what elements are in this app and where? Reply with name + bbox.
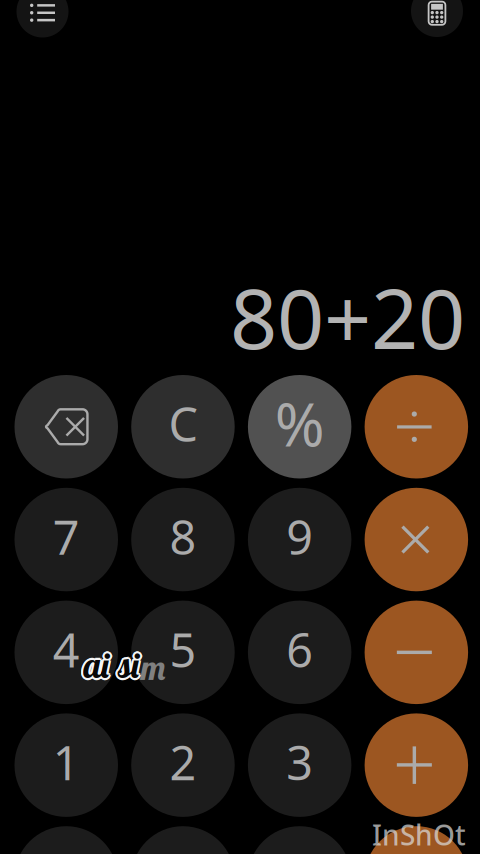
staticText: 3 <box>286 731 313 793</box>
staticText: 1 <box>53 731 80 793</box>
staticText: InShOt <box>372 816 466 853</box>
button[interactable]: Divide <box>365 375 468 478</box>
staticText: ai si <box>85 645 143 688</box>
staticText: 80+20 <box>230 262 465 372</box>
button[interactable]: 8 <box>131 488 235 591</box>
button[interactable]: Subtract <box>365 601 468 704</box>
staticText: 7 <box>53 506 80 568</box>
button[interactable]: % <box>248 375 351 478</box>
staticText: % <box>275 383 325 463</box>
button[interactable]: 6 <box>248 601 351 704</box>
staticText: 5 <box>169 618 196 680</box>
button[interactable]: History <box>16 0 68 37</box>
button[interactable]: Calculator <box>411 0 463 37</box>
button[interactable]: Delete <box>14 375 118 478</box>
staticText: ai si <box>81 643 139 687</box>
button[interactable]: Equals <box>365 826 468 854</box>
button[interactable]: Multiply <box>365 488 468 591</box>
button[interactable]: 0 <box>14 826 118 854</box>
button[interactable]: 2 <box>131 713 235 817</box>
staticText: m <box>140 645 167 689</box>
staticText: 2 <box>169 731 196 793</box>
staticText: ai si <box>85 642 143 685</box>
staticText: C <box>168 393 197 455</box>
staticText: ai si <box>81 645 139 688</box>
button[interactable]: Add <box>365 713 468 817</box>
button[interactable]: C <box>131 375 235 478</box>
staticText: 4 <box>53 618 80 680</box>
staticText: ai si <box>83 643 141 687</box>
button[interactable]: 1 <box>14 713 118 817</box>
staticText: 8 <box>169 506 196 568</box>
button[interactable]: 3 <box>248 713 351 817</box>
staticText: ai si <box>85 643 143 687</box>
staticText: ai si <box>81 642 139 685</box>
staticText: 6 <box>286 618 313 680</box>
button[interactable]: 7 <box>14 488 118 591</box>
staticText: ai si <box>83 641 141 684</box>
button[interactable]: 4 <box>14 601 118 704</box>
staticText: ai si <box>83 645 141 689</box>
button[interactable]: ± <box>248 826 351 854</box>
button[interactable]: . <box>131 826 235 854</box>
staticText: 9 <box>286 506 313 568</box>
button[interactable]: 9 <box>248 488 351 591</box>
button[interactable]: 5 <box>131 601 235 704</box>
